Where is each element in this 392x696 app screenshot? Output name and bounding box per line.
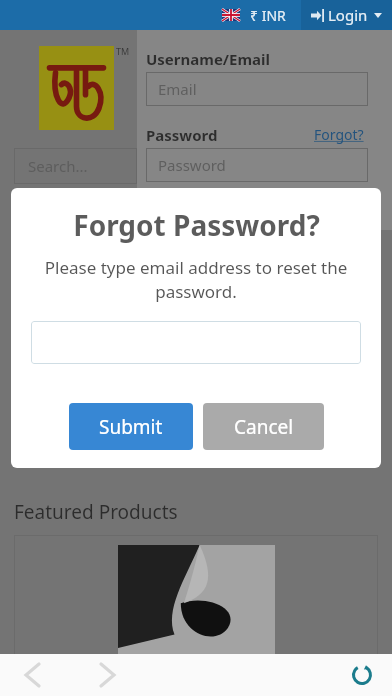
staticText: Cancel (234, 414, 294, 440)
staticText: Forgot Password? (73, 206, 320, 244)
button[interactable]: Search... (14, 148, 137, 184)
staticText: Please type email address to reset the p… (31, 256, 361, 303)
button[interactable]: ₹ INR (250, 6, 286, 25)
staticText: Login (328, 5, 368, 25)
button[interactable] (14, 535, 378, 655)
staticText: TM (116, 45, 130, 57)
button[interactable]: Forgot? (314, 125, 364, 144)
button[interactable]: Language: English (222, 9, 240, 21)
staticText: Forgot? (314, 125, 364, 144)
staticText: ₹ INR (250, 6, 286, 25)
button[interactable]: Email (146, 72, 368, 106)
button[interactable]: Password (146, 148, 368, 182)
button[interactable]: Forward (87, 655, 127, 695)
staticText: Email (158, 79, 197, 99)
staticText: Password (158, 155, 226, 175)
button[interactable]: Login (301, 0, 392, 30)
staticText: Search... (28, 156, 88, 176)
button[interactable]: Cancel (203, 403, 324, 450)
button[interactable]: Back (12, 655, 52, 695)
staticText: Password (146, 125, 218, 145)
staticText: Featured Products (14, 499, 178, 525)
button[interactable]: Submit (69, 403, 193, 450)
button[interactable]: Refresh (342, 655, 382, 695)
staticText: Username/Email (146, 49, 271, 69)
staticText: Submit (99, 414, 163, 440)
button[interactable]: Email address input (31, 321, 361, 364)
